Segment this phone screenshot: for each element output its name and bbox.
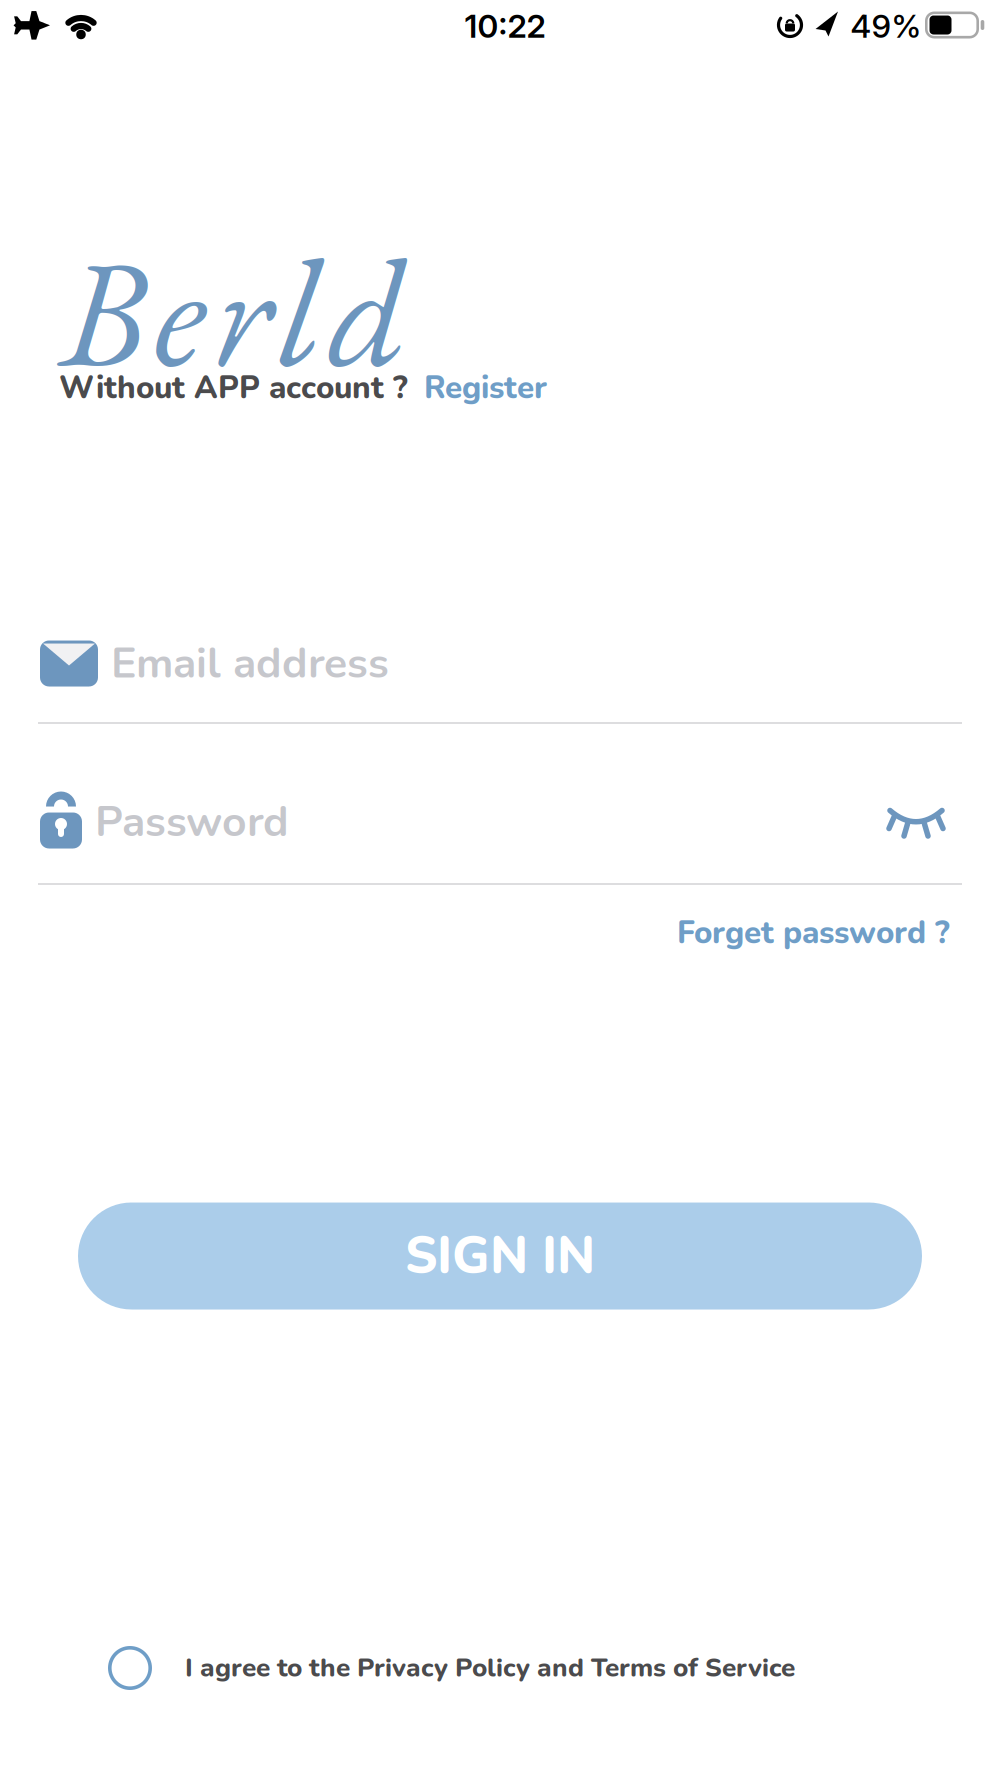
staticText: 10:22 [464, 7, 545, 45]
button[interactable]: Password [40, 793, 960, 851]
staticText: Password [95, 793, 289, 851]
staticText: Email address [111, 634, 389, 693]
button[interactable]: Register [424, 367, 547, 409]
button[interactable] [108, 1646, 152, 1690]
staticText: Forget password ? [677, 912, 950, 954]
staticText: I agree to the Privacy Policy and Terms … [185, 1650, 795, 1686]
staticText: Berld [60, 212, 406, 410]
staticText: Register [424, 367, 547, 409]
button[interactable]: SIGN IN [78, 1202, 922, 1309]
staticText: 49% [850, 7, 921, 45]
staticText: SIGN IN [405, 1221, 595, 1290]
button[interactable] [888, 808, 960, 836]
staticText: Without APP account ? [59, 367, 408, 409]
button[interactable]: Email address [40, 634, 960, 693]
button[interactable]: Forget password ? [677, 912, 950, 954]
